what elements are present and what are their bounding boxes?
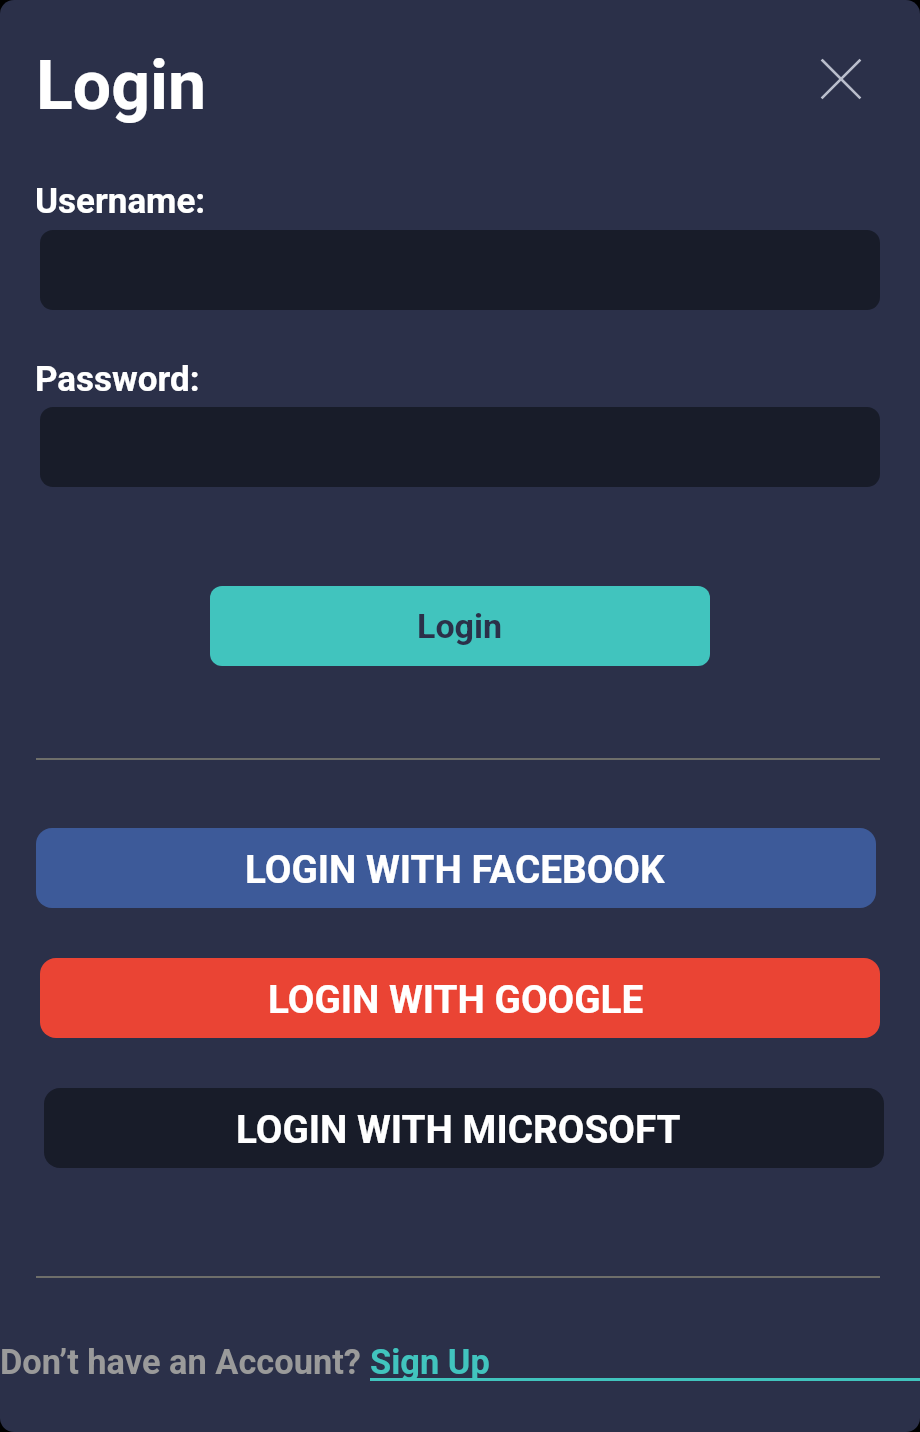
button[interactable]: Login xyxy=(210,586,710,666)
staticText: Password: xyxy=(35,359,200,400)
staticText: Don’t have an Account? xyxy=(0,1342,370,1382)
button[interactable]: LOGIN WITH GOOGLE xyxy=(40,958,880,1038)
button[interactable]: LOGIN WITH MICROSOFT xyxy=(44,1088,884,1168)
staticText: Login xyxy=(417,606,503,646)
staticText: Sign Up xyxy=(370,1342,490,1382)
staticText: LOGIN WITH FACEBOOK xyxy=(245,847,665,892)
staticText: LOGIN WITH GOOGLE xyxy=(268,977,644,1022)
staticText: Username: xyxy=(35,181,206,222)
button[interactable]: LOGIN WITH FACEBOOK xyxy=(36,828,876,908)
staticText: LOGIN WITH MICROSOFT xyxy=(236,1107,681,1152)
button[interactable]: Close xyxy=(803,41,879,117)
staticText: Login xyxy=(36,46,207,126)
button[interactable]: Sign Up xyxy=(370,1342,920,1382)
